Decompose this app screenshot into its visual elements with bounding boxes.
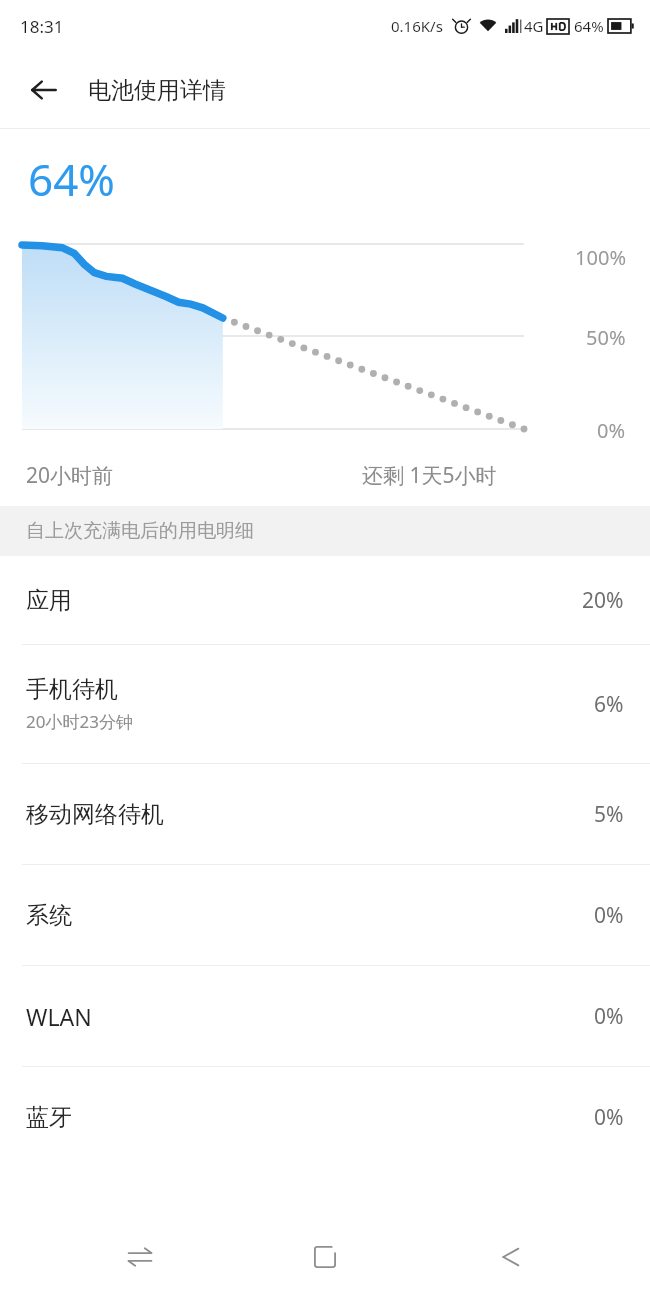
staticText: 0% <box>594 1103 624 1132</box>
staticText: 64% <box>574 16 604 36</box>
button[interactable]: Back <box>20 66 68 114</box>
staticText: 还剩 1天5小时 <box>362 461 497 490</box>
button[interactable]: 系统 <box>0 865 650 965</box>
staticText: 50% <box>586 324 626 351</box>
staticText: 0% <box>594 901 624 930</box>
staticText: 6% <box>594 690 624 719</box>
button[interactable]: 蓝牙 <box>0 1067 650 1167</box>
staticText: 应用 <box>26 586 72 615</box>
staticText: 手机待机 <box>26 675 118 704</box>
staticText: 蓝牙 <box>26 1103 72 1132</box>
button[interactable]: 手机待机 <box>0 645 650 763</box>
staticText: 18:31 <box>20 15 64 38</box>
button[interactable]: WLAN <box>0 966 650 1066</box>
button[interactable]: Switch <box>95 1214 185 1300</box>
staticText: 4G <box>524 16 544 36</box>
staticText: 移动网络待机 <box>26 800 164 829</box>
staticText: 20% <box>582 586 624 615</box>
staticText: 自上次充满电后的用电明细 <box>26 519 254 543</box>
button[interactable]: Back <box>465 1214 555 1300</box>
staticText: 0% <box>594 1002 624 1031</box>
staticText: 64% <box>28 149 115 209</box>
staticText: 20小时前 <box>26 461 114 490</box>
staticText: 系统 <box>26 901 72 930</box>
button[interactable]: 移动网络待机 <box>0 764 650 864</box>
staticText: 100% <box>575 244 626 271</box>
staticText: 0.16K/s <box>391 16 443 36</box>
staticText: 20小时23分钟 <box>26 710 133 733</box>
staticText: WLAN <box>26 1001 92 1032</box>
staticText: 0% <box>597 417 626 444</box>
staticText: 5% <box>594 800 624 829</box>
staticText: 电池使用详情 <box>88 76 226 105</box>
button[interactable]: 应用 <box>0 556 650 644</box>
button[interactable]: Home <box>280 1214 370 1300</box>
